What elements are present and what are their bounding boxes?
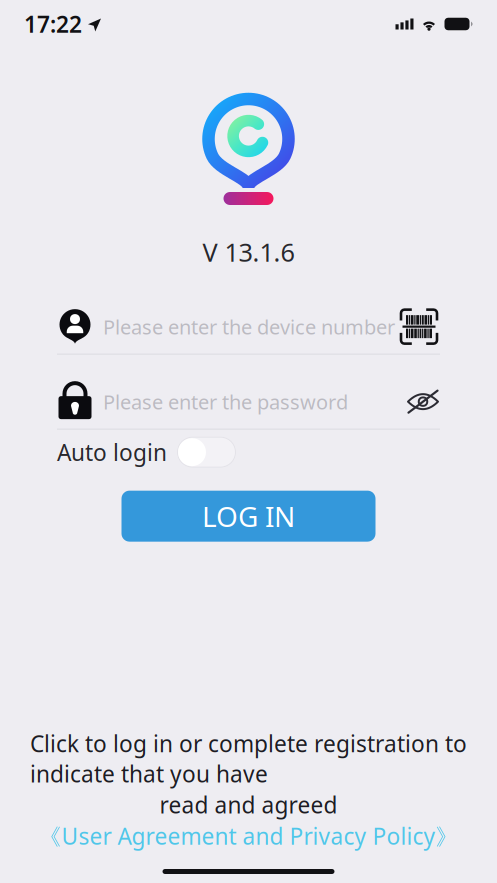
staticText: 《User Agreement and Privacy Policy》	[38, 821, 458, 851]
staticText: Please enter the password	[103, 388, 348, 415]
button[interactable]: 《User Agreement and Privacy Policy》	[38, 821, 458, 851]
button[interactable]: Scan barcode	[398, 307, 440, 347]
button[interactable]: Auto login	[177, 437, 236, 468]
staticText: V 13.1.6	[202, 235, 294, 269]
staticText: Auto login	[57, 437, 167, 467]
staticText: LOG IN	[202, 498, 295, 535]
staticText: 17:22	[24, 9, 82, 39]
button[interactable]: LOG IN	[121, 491, 375, 542]
staticText: Please enter the device number	[103, 313, 395, 340]
staticText: Click to log in or complete registration…	[30, 728, 467, 789]
staticText: read and agreed	[159, 790, 337, 820]
button[interactable]: Show password	[406, 389, 440, 415]
